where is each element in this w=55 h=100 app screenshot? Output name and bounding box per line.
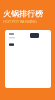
staticText: 火锅排行榜 bbox=[3, 9, 43, 19]
staticText: HOT POT RANKING bbox=[3, 19, 37, 24]
